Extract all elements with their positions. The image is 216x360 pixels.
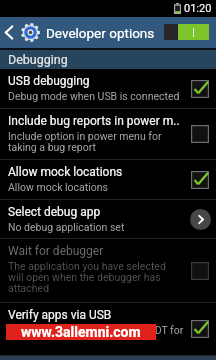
button[interactable]: Select debug app [0, 200, 216, 239]
staticText: Check apps installed via ADB/ADT for har… [8, 324, 184, 336]
staticText: The application you have selected will o… [8, 260, 166, 294]
staticText: Debugging [8, 52, 68, 67]
staticText: Verify apps via USB [8, 308, 112, 322]
staticText: Allow mock locations [8, 181, 109, 193]
staticText: Developer options [46, 25, 155, 41]
staticText: Include bug reports in power m.. [8, 114, 180, 128]
button[interactable]: Verify apps via USB [0, 303, 216, 356]
button[interactable]: Developer options on [164, 24, 209, 40]
button[interactable]: Navigate up [0, 17, 18, 48]
staticText: Wait for debugger [8, 244, 104, 258]
staticText: Allow mock locations [8, 165, 123, 179]
staticText: 01:20 [184, 2, 212, 15]
button[interactable]: Allow mock locations [0, 160, 216, 200]
staticText: No debug application set [8, 221, 125, 233]
button[interactable]: Select debug app [190, 209, 211, 230]
staticText: Include option in power menu for taking … [8, 130, 162, 153]
staticText: Select debug app [8, 205, 101, 219]
button[interactable]: USB debugging [0, 69, 216, 109]
button[interactable]: Wait for debugger [0, 239, 216, 303]
button[interactable]: Include bug reports in power m.. [0, 109, 216, 160]
staticText: www.3allemni.com [21, 324, 141, 340]
staticText: Debug mode when USB is connected [8, 90, 180, 102]
staticText: USB debugging [8, 74, 90, 88]
